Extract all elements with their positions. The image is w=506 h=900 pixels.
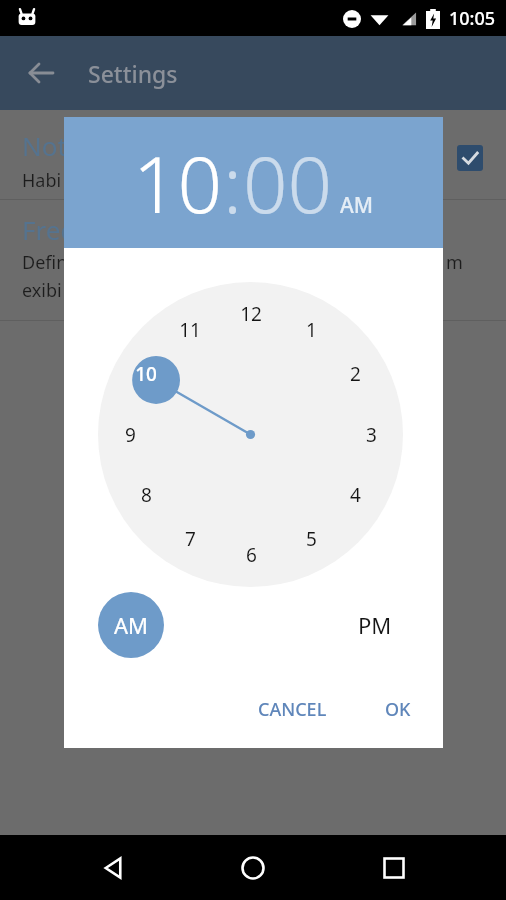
button[interactable]: Back	[24, 56, 58, 90]
button[interactable]: AM	[98, 592, 164, 658]
staticText: PM	[358, 610, 392, 640]
button[interactable]: 3	[351, 419, 391, 451]
staticText: 10:05	[449, 6, 496, 31]
button[interactable]: 11	[170, 314, 210, 346]
button[interactable]: 5	[291, 523, 331, 555]
button[interactable]: Notifications enabled	[457, 145, 483, 171]
staticText: 9	[125, 422, 136, 448]
staticText: Not	[22, 128, 67, 163]
staticText: AM	[114, 610, 149, 640]
staticText: 1	[306, 317, 317, 343]
staticText: :	[223, 130, 243, 236]
staticText: 12	[240, 301, 262, 327]
button[interactable]: 12	[231, 298, 271, 330]
staticText: 4	[350, 482, 361, 508]
staticText: m	[446, 250, 463, 275]
button[interactable]: 8	[126, 479, 166, 511]
button[interactable]: 7	[170, 523, 210, 555]
staticText: Settings	[88, 58, 178, 89]
button[interactable]: PM	[342, 592, 408, 658]
button[interactable]: 10	[133, 130, 223, 236]
button[interactable]: 9	[110, 419, 150, 451]
staticText: 3	[366, 422, 377, 448]
button[interactable]: CANCEL	[246, 689, 339, 730]
staticText: Freq	[22, 212, 77, 247]
staticText: 11	[179, 317, 201, 343]
button[interactable]: 6	[231, 539, 271, 571]
staticText: 10	[135, 361, 157, 387]
staticText: AM	[340, 191, 374, 220]
button[interactable]: 4	[335, 479, 375, 511]
staticText: 2	[350, 361, 361, 387]
button[interactable]: 1	[291, 314, 331, 346]
button[interactable]: OK	[373, 689, 423, 730]
staticText: 6	[246, 542, 257, 568]
button[interactable]: 10	[126, 358, 166, 390]
staticText: 7	[185, 526, 196, 552]
button[interactable]: Home	[225, 840, 281, 896]
button[interactable]: Recents	[366, 840, 422, 896]
button[interactable]: 2	[335, 358, 375, 390]
staticText: Defin	[22, 250, 68, 275]
staticText: 8	[141, 482, 152, 508]
button[interactable]: Back	[85, 840, 141, 896]
staticText: OK	[385, 697, 411, 722]
staticText: CANCEL	[258, 697, 327, 722]
button[interactable]: 00	[243, 130, 333, 236]
staticText: Habi	[22, 168, 62, 193]
staticText: 5	[306, 526, 317, 552]
staticText: exibi	[22, 278, 62, 303]
